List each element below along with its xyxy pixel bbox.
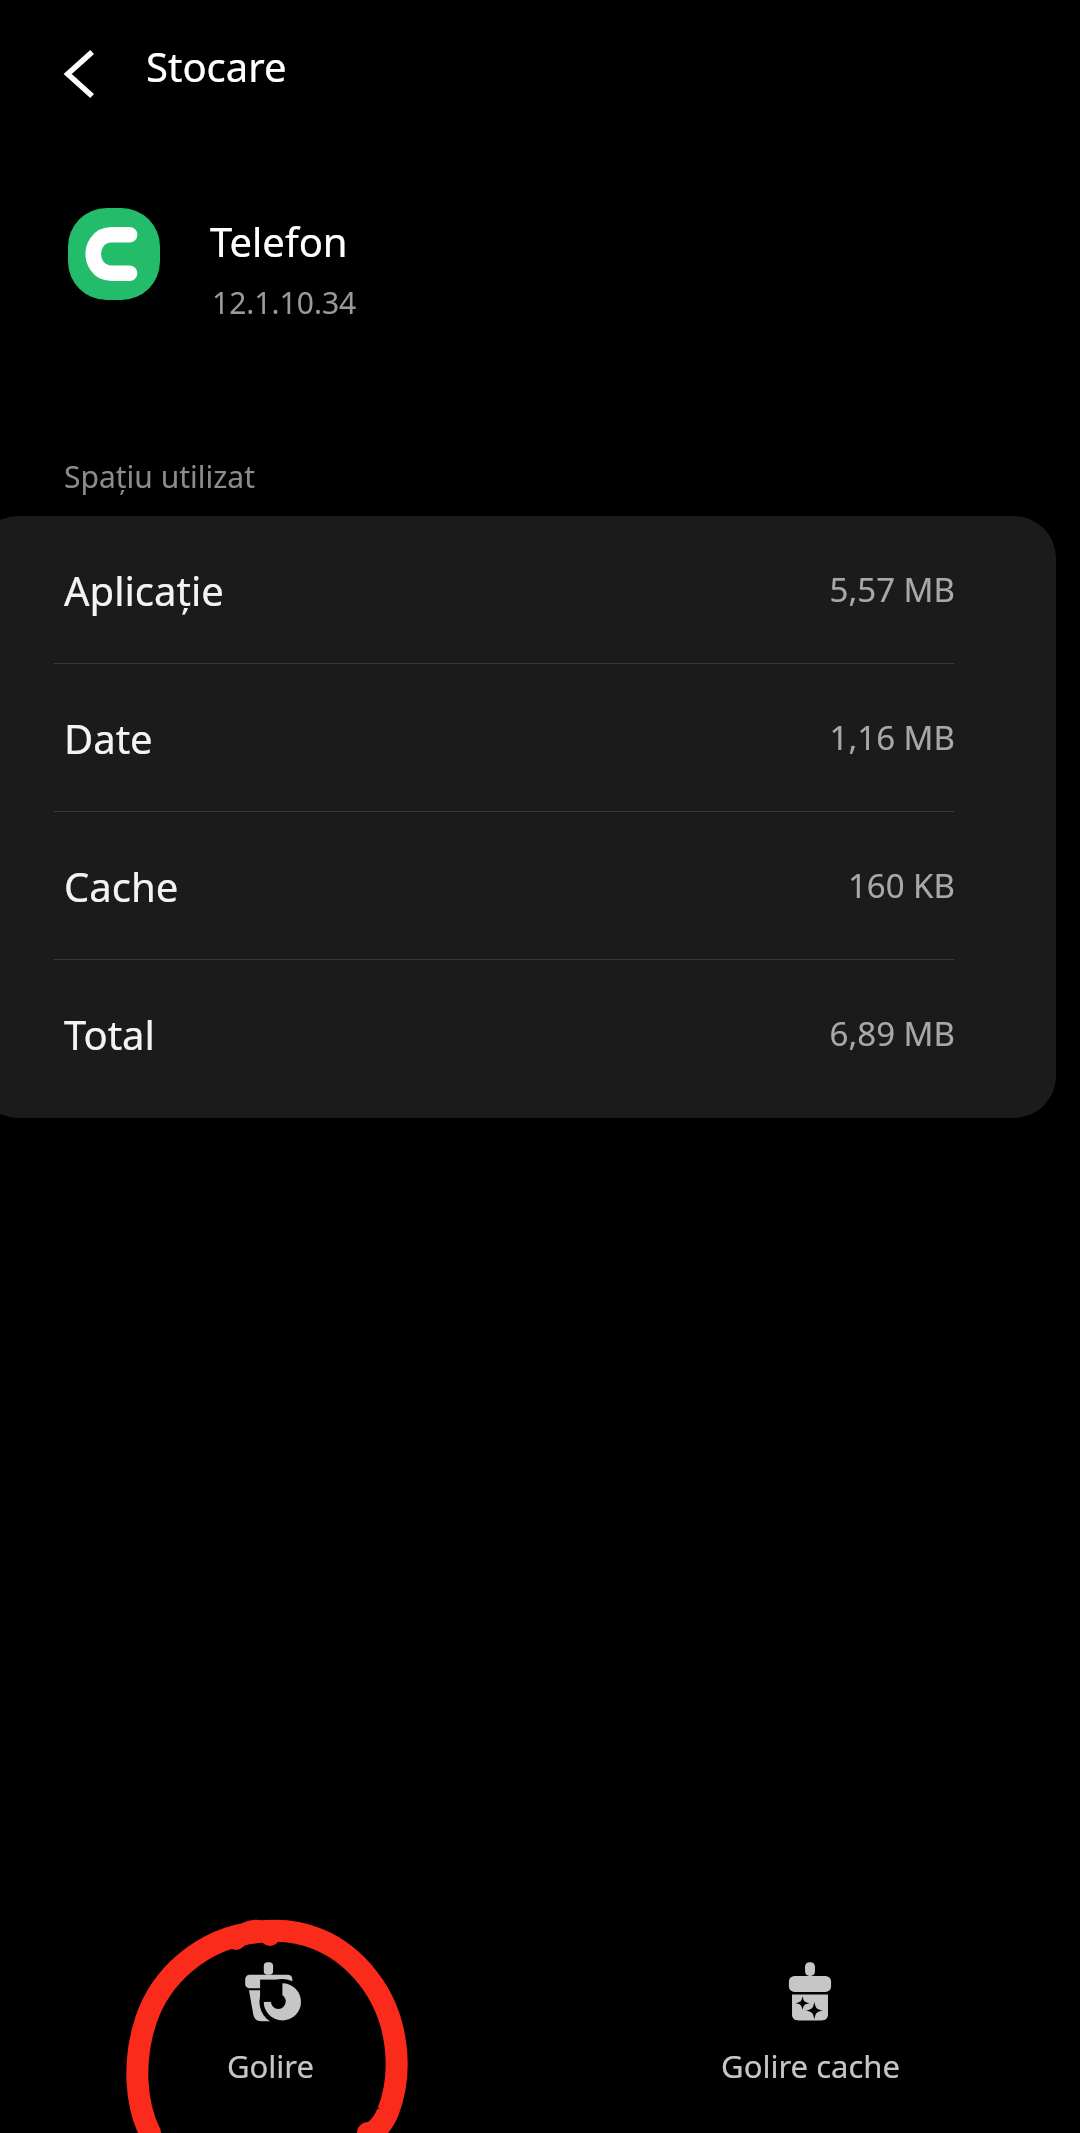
button[interactable]: Cache — [0, 812, 1056, 959]
staticText: 12.1.10.34 — [212, 282, 357, 323]
staticText: Golire cache — [721, 2045, 900, 2087]
staticText: 1,16 MB — [829, 715, 955, 760]
staticText: Total — [64, 1007, 155, 1061]
button[interactable]: Date — [0, 664, 1056, 811]
staticText: Telefon — [210, 214, 348, 268]
staticText: 5,57 MB — [829, 567, 955, 612]
staticText: 6,89 MB — [829, 1011, 955, 1056]
staticText: Golire — [227, 2045, 314, 2087]
staticText: Spațiu utilizat — [64, 456, 256, 497]
other: Golire — [239, 1961, 301, 2023]
button[interactable]: Back — [28, 22, 132, 126]
button[interactable]: Aplicație — [0, 516, 1056, 663]
other: Golire cache — [779, 1961, 841, 2023]
staticText: 160 KB — [847, 863, 955, 908]
staticText: Aplicație — [64, 563, 224, 617]
button[interactable]: Golire cache — [540, 1883, 1080, 2087]
button[interactable]: Golire — [0, 1883, 540, 2087]
button[interactable]: Total — [0, 960, 1056, 1107]
staticText: Cache — [64, 859, 179, 913]
staticText: Date — [64, 711, 153, 765]
staticText: Stocare — [146, 39, 287, 93]
